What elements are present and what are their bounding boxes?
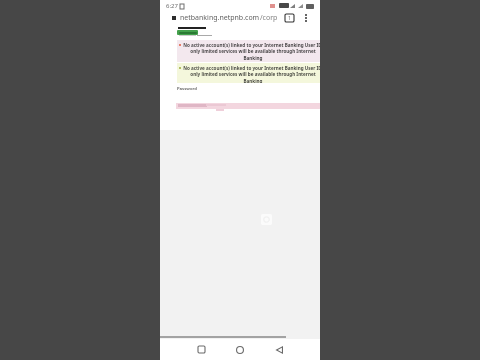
button[interactable]: Recent apps <box>189 339 213 360</box>
staticText: No active account(s) linked to your Inte… <box>182 42 320 62</box>
button[interactable] <box>177 30 198 35</box>
button[interactable]: Back <box>267 339 291 360</box>
staticText: 1 <box>288 15 291 22</box>
staticText: 6:27 <box>166 2 178 10</box>
staticText: No active account(s) linked to your Inte… <box>182 65 320 83</box>
button[interactable]: Open tab switcher <box>285 14 294 22</box>
button[interactable]: Home <box>228 339 252 360</box>
staticText: Password <box>177 86 197 92</box>
staticText: /corp <box>260 13 278 23</box>
button[interactable]: More options <box>302 14 310 22</box>
staticText: netbanking.netpnb.com <box>180 13 260 23</box>
